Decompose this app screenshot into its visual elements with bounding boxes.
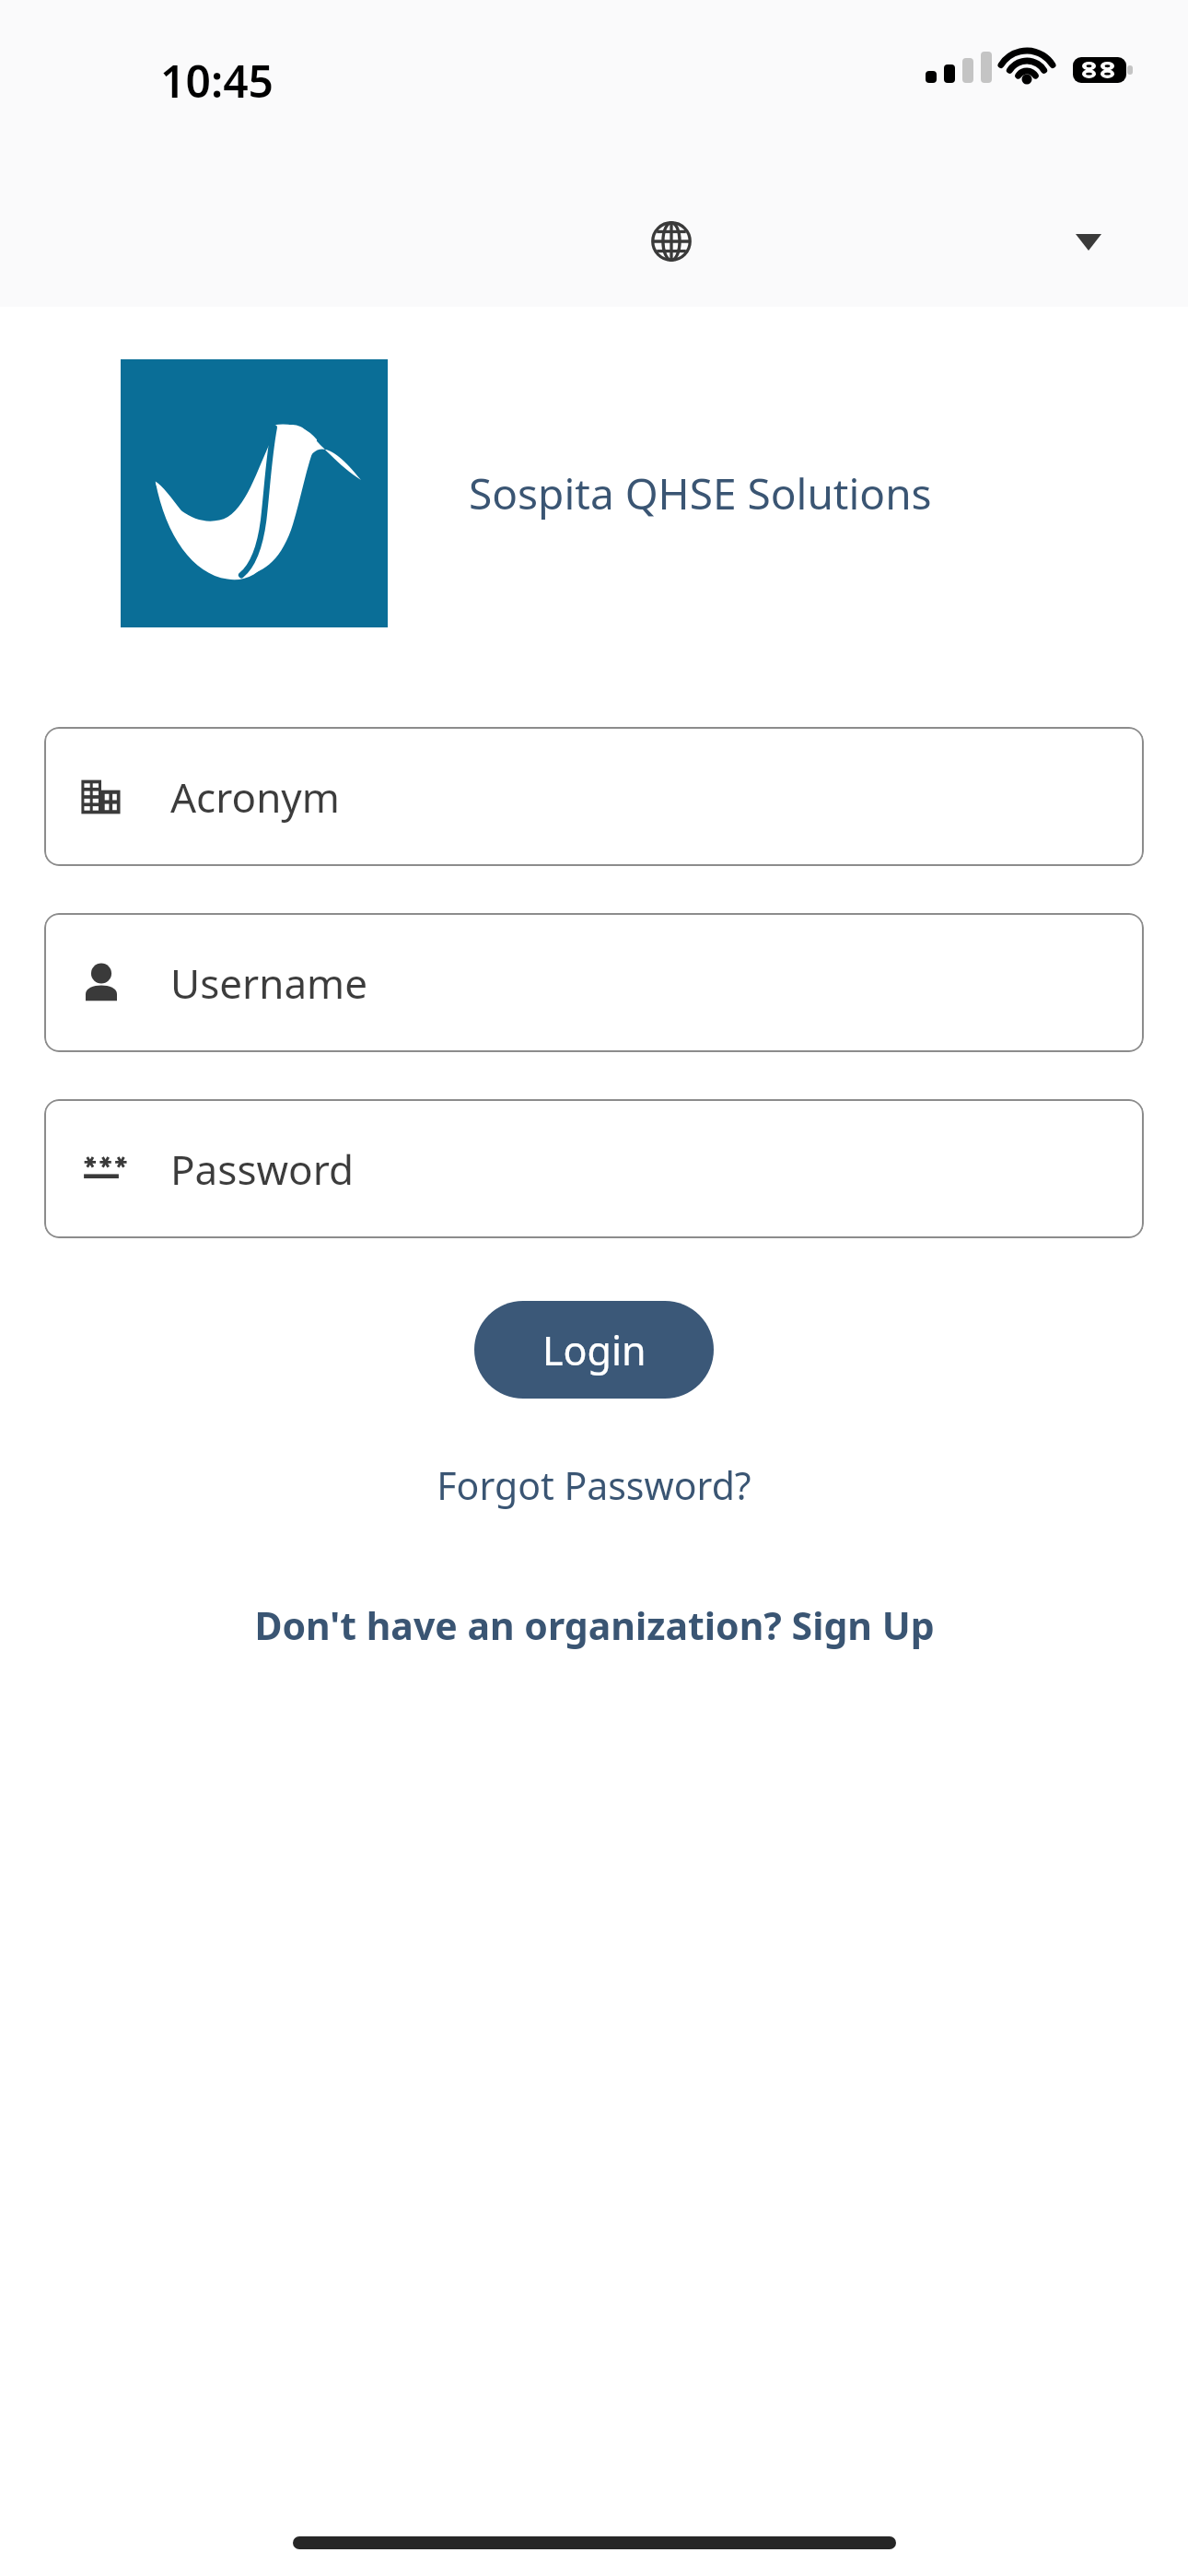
- staticText: Forgot Password?: [437, 1459, 751, 1511]
- button[interactable]: Open language dropdown: [1061, 215, 1116, 270]
- button[interactable]: Don't have an organization? Sign Up: [254, 1599, 935, 1651]
- staticText: Acronym: [170, 769, 340, 825]
- staticText: Don't have an organization? Sign Up: [254, 1599, 935, 1651]
- staticText: 10:45: [160, 51, 274, 111]
- button[interactable]: Forgot Password?: [437, 1459, 751, 1511]
- staticText: Username: [170, 955, 368, 1011]
- staticText: Sospita QHSE Solutions: [469, 464, 932, 522]
- button[interactable]: Login: [474, 1301, 714, 1399]
- button[interactable]: Acronym: [44, 727, 1144, 866]
- staticText: Login: [542, 1323, 646, 1377]
- staticText: Password: [170, 1142, 355, 1197]
- button[interactable]: Username: [44, 913, 1144, 1052]
- button[interactable]: Password: [44, 1099, 1144, 1238]
- button[interactable]: Select language: [645, 215, 698, 268]
